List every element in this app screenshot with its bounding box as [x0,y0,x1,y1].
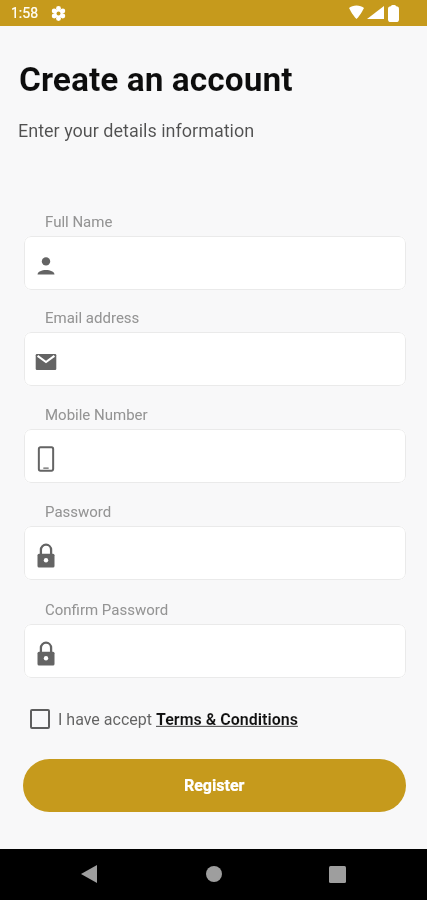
staticText: I have accept [58,710,156,729]
staticText: Create an account [19,60,293,99]
button[interactable]: Register [23,759,406,812]
staticText: Mobile Number [45,406,148,424]
other: Phone [34,447,58,471]
other: Settings [51,6,66,21]
staticText: Email address [45,309,140,327]
button[interactable]: Terms & Conditions [156,710,298,729]
button[interactable]: Password [24,624,406,678]
staticText: Confirm Password [45,601,169,619]
staticText: 1:58 [11,5,38,21]
button[interactable]: Password [24,526,406,580]
button[interactable]: Back [69,854,109,894]
button[interactable]: Person [24,236,406,290]
staticText: Full Name [45,213,113,231]
button[interactable]: Phone [24,429,406,483]
button[interactable]: Home [194,854,234,894]
button[interactable]: Recent apps [317,854,357,894]
other: Password [34,544,58,568]
button[interactable]: Accept terms checkbox [30,709,50,729]
staticText: Enter your details information [18,120,255,141]
staticText: Register [184,776,245,795]
other: Email [34,350,58,374]
staticText: Password [45,503,112,521]
staticText: Terms & Conditions [156,710,298,729]
other: Password [34,642,58,666]
other: Person [34,254,58,278]
button[interactable]: Email [24,332,406,386]
